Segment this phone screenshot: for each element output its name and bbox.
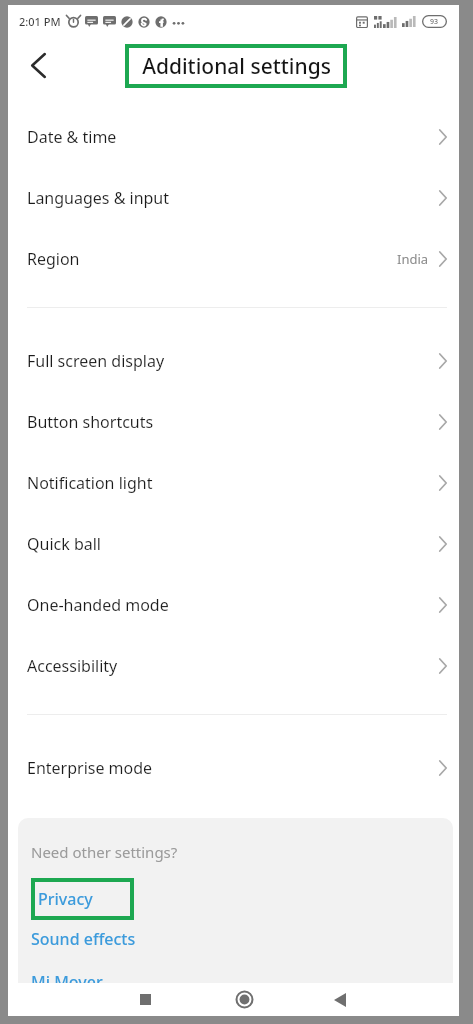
staticText: Button shortcuts	[27, 411, 439, 433]
button[interactable]: Enterprise mode	[8, 737, 459, 798]
staticText: India	[397, 250, 429, 268]
staticText: Full screen display	[27, 350, 439, 372]
staticText: Need other settings?	[31, 842, 178, 862]
staticText: Date & time	[27, 126, 439, 148]
button[interactable]: Home	[225, 983, 263, 1016]
button[interactable]: Date & time	[8, 106, 459, 167]
button[interactable]: Notification light	[8, 452, 459, 513]
button[interactable]: Button shortcuts	[8, 391, 459, 452]
staticText: Region	[27, 248, 397, 270]
staticText: Mi Mover	[31, 971, 103, 993]
button[interactable]: Privacy	[35, 882, 130, 916]
staticText: Accessibility	[27, 655, 439, 677]
button[interactable]: Mi Mover	[31, 971, 103, 993]
button[interactable]: Languages & input	[8, 167, 459, 228]
button[interactable]: Quick ball	[8, 513, 459, 574]
button[interactable]: Recent apps	[126, 983, 164, 1016]
button[interactable]: Back	[16, 43, 60, 87]
button[interactable]: Full screen display	[8, 330, 459, 391]
button[interactable]: One-handed mode	[8, 574, 459, 635]
button[interactable]: Sound effects	[31, 928, 136, 950]
staticText: Additional settings	[142, 52, 331, 81]
staticText: Enterprise mode	[27, 757, 439, 779]
staticText: One-handed mode	[27, 594, 439, 616]
staticText: Languages & input	[27, 187, 439, 209]
staticText: Privacy	[38, 888, 93, 910]
staticText: Quick ball	[27, 533, 439, 555]
button[interactable]: Region	[8, 228, 459, 289]
button[interactable]: Back	[321, 983, 359, 1016]
staticText: 93	[430, 17, 439, 27]
staticText: 2:01 PM	[19, 14, 61, 29]
staticText: Sound effects	[31, 928, 136, 950]
button[interactable]: Accessibility	[8, 635, 459, 696]
staticText: Notification light	[27, 472, 439, 494]
